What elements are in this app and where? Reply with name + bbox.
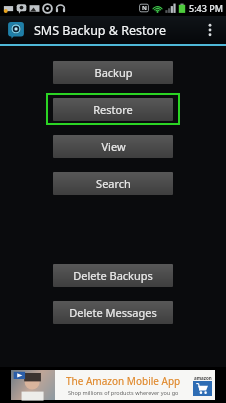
button[interactable]: Delete Messages <box>53 301 173 324</box>
staticText: 5:43 PM <box>189 2 223 14</box>
button[interactable]: View <box>53 135 173 158</box>
staticText: The Amazon Mobile App <box>66 374 181 388</box>
staticText: Shop millions of products wherever you g… <box>68 389 179 396</box>
staticText: SMS Backup & Restore <box>34 22 167 39</box>
staticText: Search <box>96 176 131 191</box>
button[interactable]: Search <box>53 172 173 195</box>
staticText: Restore <box>93 102 133 117</box>
staticText: Delete Backups <box>73 268 153 283</box>
staticText: N <box>142 4 147 12</box>
staticText: Backup <box>94 65 133 80</box>
staticText: View <box>101 139 126 154</box>
staticText: amazon <box>194 375 212 381</box>
button[interactable]: Advertisement: The Amazon Mobile App <box>11 370 215 400</box>
button[interactable]: Delete Backups <box>53 264 173 287</box>
button[interactable]: Backup <box>53 61 173 84</box>
button[interactable]: Restore <box>53 98 173 121</box>
button[interactable]: More options <box>200 16 220 44</box>
staticText: Delete Messages <box>69 305 157 320</box>
